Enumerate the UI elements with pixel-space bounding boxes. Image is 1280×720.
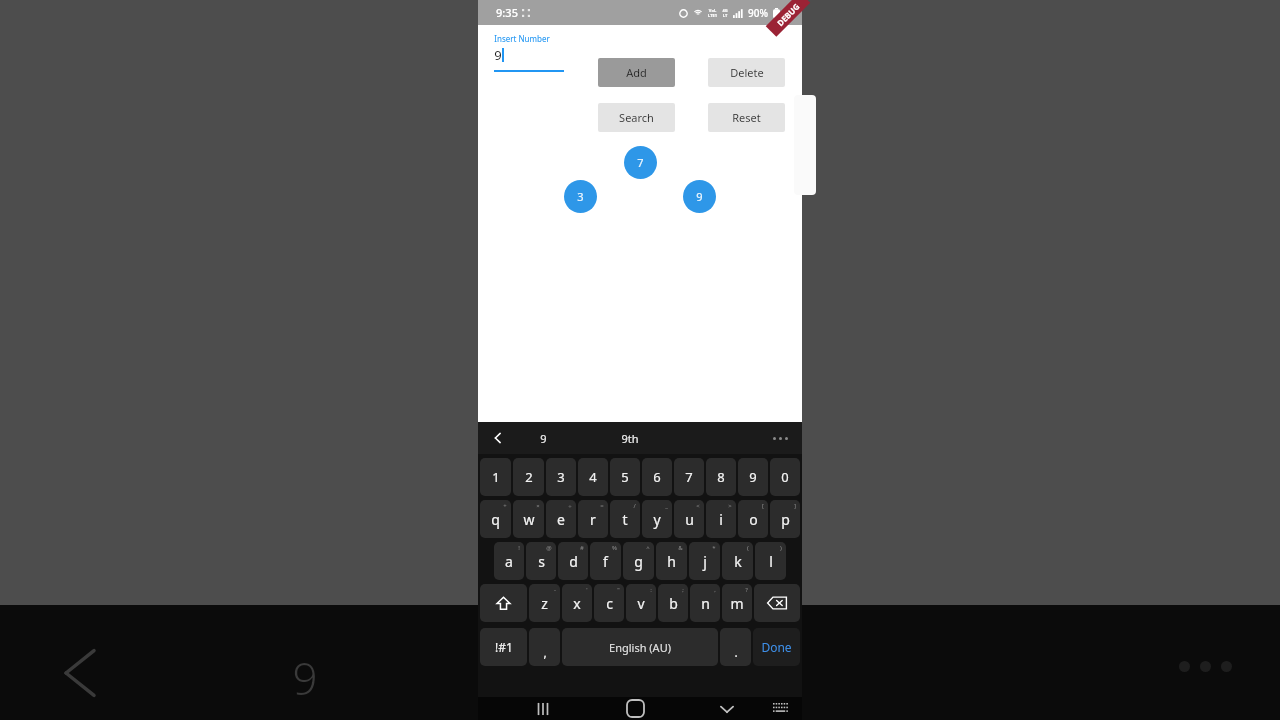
button[interactable]: !#1 <box>480 628 527 666</box>
staticText: 3 <box>557 468 565 486</box>
button[interactable]: ) <box>755 542 786 580</box>
staticText: x <box>573 594 581 613</box>
button[interactable]: Hide keyboard <box>710 697 744 720</box>
button[interactable]: × <box>513 500 544 538</box>
button[interactable]: 6 <box>642 458 672 496</box>
button[interactable]: ? <box>722 584 752 622</box>
staticText: 6 <box>653 468 661 486</box>
staticText: g <box>634 552 643 571</box>
button[interactable]: 7 <box>624 146 657 179</box>
button[interactable]: 0 <box>770 458 800 496</box>
button[interactable] <box>794 95 816 195</box>
button[interactable]: Delete <box>708 58 785 87</box>
staticText: 0 <box>781 468 789 486</box>
staticText: , <box>543 644 547 660</box>
staticText: k <box>734 552 742 571</box>
staticText: 1 <box>492 468 500 486</box>
button[interactable]: @ <box>526 542 556 580</box>
button[interactable]: _ <box>642 500 672 538</box>
button[interactable]: : <box>626 584 656 622</box>
staticText: 9 <box>494 46 502 64</box>
staticText: . <box>734 644 738 660</box>
button[interactable]: Done <box>753 628 800 666</box>
button[interactable]: + <box>480 500 511 538</box>
button[interactable]: ÷ <box>546 500 576 538</box>
button[interactable]: = <box>578 500 608 538</box>
staticText: f <box>603 552 608 571</box>
button[interactable]: Reset <box>708 103 785 132</box>
button[interactable]: 9 <box>683 180 716 213</box>
button[interactable]: * <box>689 542 720 580</box>
staticText: ) <box>780 544 782 552</box>
staticText: ! <box>518 544 520 552</box>
button[interactable]: Recents <box>526 697 560 720</box>
staticText: ' <box>586 586 588 594</box>
staticText: a <box>505 552 513 571</box>
staticText: !#1 <box>495 639 513 655</box>
button[interactable]: 3 <box>564 180 597 213</box>
staticText: Add <box>626 65 647 80</box>
button[interactable]: Backspace <box>754 584 800 622</box>
staticText: > <box>728 502 732 510</box>
button[interactable]: , <box>690 584 720 622</box>
button[interactable]: < <box>674 500 704 538</box>
button[interactable]: Switch keyboard <box>764 697 798 720</box>
button[interactable]: ; <box>658 584 688 622</box>
button[interactable]: ( <box>722 542 753 580</box>
staticText: s <box>538 552 545 571</box>
staticText: DEBUG <box>774 1 802 28</box>
staticText: 9 <box>540 431 547 446</box>
button[interactable]: 4 <box>578 458 608 496</box>
button[interactable]: Back <box>492 432 504 444</box>
button[interactable]: , <box>529 628 560 666</box>
button[interactable]: 9 <box>738 458 768 496</box>
button[interactable]: 9th <box>621 431 639 446</box>
staticText: < <box>696 502 700 510</box>
button[interactable]: 2 <box>513 458 544 496</box>
staticText: b <box>669 594 678 613</box>
staticText: v <box>637 594 645 613</box>
button[interactable]: % <box>590 542 621 580</box>
staticText: * <box>712 544 716 552</box>
staticText: Delete <box>730 65 764 80</box>
staticText: × <box>536 502 540 510</box>
staticText: 9 <box>292 648 318 708</box>
button[interactable]: More options <box>773 437 788 440</box>
button[interactable]: 9 <box>540 431 547 446</box>
staticText: VoL LTE1 <box>708 8 717 18</box>
button[interactable]: ] <box>770 500 800 538</box>
button[interactable]: # <box>558 542 588 580</box>
button[interactable]: & <box>656 542 687 580</box>
button[interactable]: 1 <box>480 458 511 496</box>
button[interactable]: [ <box>738 500 768 538</box>
staticText: m <box>730 594 744 613</box>
button[interactable]: 3 <box>546 458 576 496</box>
button[interactable]: Search <box>598 103 675 132</box>
staticText: z <box>541 594 548 613</box>
button[interactable]: ^ <box>623 542 654 580</box>
button[interactable]: 7 <box>674 458 704 496</box>
staticText: t <box>622 510 628 529</box>
staticText: 4G LT <box>722 8 728 18</box>
button[interactable]: ' <box>562 584 592 622</box>
staticText: ] <box>794 502 796 510</box>
button[interactable]: 5 <box>610 458 640 496</box>
staticText: ^ <box>646 544 650 552</box>
button[interactable]: Home <box>618 697 652 720</box>
button[interactable]: - <box>529 584 560 622</box>
button[interactable]: 8 <box>706 458 736 496</box>
button[interactable]: English (AU) <box>562 628 718 666</box>
button[interactable]: Add <box>598 58 675 87</box>
button[interactable]: " <box>594 584 624 622</box>
button[interactable]: / <box>610 500 640 538</box>
button[interactable]: Shift <box>480 584 527 622</box>
staticText: 90% <box>748 6 768 20</box>
button[interactable]: > <box>706 500 736 538</box>
staticText: @ <box>546 544 552 552</box>
button[interactable]: . <box>720 628 751 666</box>
button[interactable]: ! <box>494 542 524 580</box>
staticText: 7 <box>685 468 693 486</box>
staticText: , <box>714 586 716 594</box>
staticText: w <box>523 510 535 529</box>
staticText: 8 <box>717 468 725 486</box>
